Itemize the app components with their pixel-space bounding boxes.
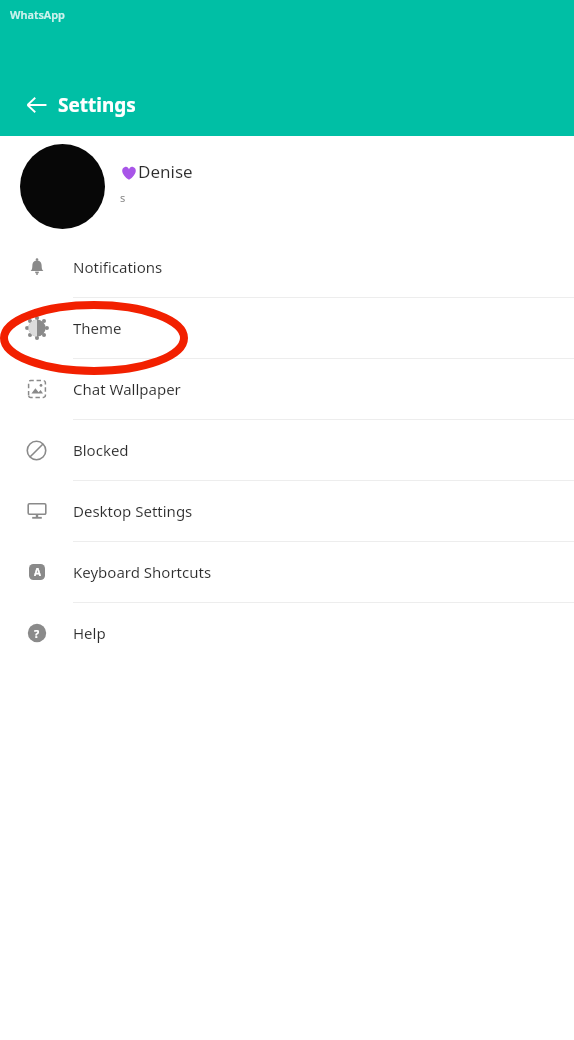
button[interactable]: ? [0, 603, 574, 663]
staticText: Theme [73, 318, 122, 338]
button[interactable]: A [0, 542, 574, 602]
staticText: Denise [138, 160, 193, 183]
staticText: Help [73, 623, 106, 643]
staticText: Notifications [73, 257, 163, 277]
staticText: Desktop Settings [73, 501, 193, 521]
button[interactable]: Denise [0, 136, 574, 237]
staticText: Settings [58, 92, 136, 118]
staticText: A [34, 565, 41, 579]
button[interactable]: Back [18, 86, 56, 124]
staticText: ? [34, 626, 40, 641]
button[interactable]: Theme [0, 298, 574, 358]
staticText: Blocked [73, 440, 129, 460]
staticText: Chat Wallpaper [73, 379, 181, 399]
button[interactable]: Blocked [0, 420, 574, 480]
staticText: Keyboard Shortcuts [73, 562, 212, 582]
button[interactable]: Desktop Settings [0, 481, 574, 541]
staticText: WhatsApp [10, 7, 65, 22]
staticText: s [120, 190, 126, 205]
button[interactable]: Notifications [0, 237, 574, 297]
button[interactable]: Chat Wallpaper [0, 359, 574, 419]
